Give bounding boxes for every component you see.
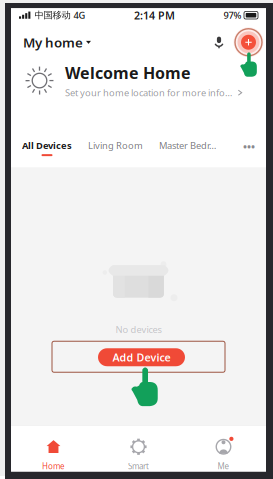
staticText: My home bbox=[23, 33, 83, 51]
staticText: No devices bbox=[115, 323, 161, 336]
button[interactable]: Add Device bbox=[98, 348, 185, 366]
staticText: Set your home location for more informa… bbox=[65, 86, 233, 99]
button[interactable]: Home bbox=[11, 426, 96, 472]
staticText: Smart bbox=[128, 461, 149, 471]
staticText: Add Device bbox=[112, 350, 170, 364]
staticText: Me bbox=[217, 461, 229, 471]
staticText: Welcome Home bbox=[65, 62, 191, 83]
staticText: ••• bbox=[243, 139, 255, 153]
button[interactable]: My home bbox=[23, 29, 91, 55]
staticText: All Devices bbox=[22, 139, 72, 152]
staticText: Master Bedr… bbox=[159, 139, 216, 152]
staticText: 4G bbox=[73, 9, 85, 21]
button[interactable]: More rooms bbox=[243, 137, 255, 155]
button[interactable]: All Devices bbox=[22, 137, 72, 158]
button[interactable]: Living Room bbox=[72, 137, 143, 154]
button[interactable]: Voice control bbox=[208, 31, 230, 53]
button[interactable]: Me bbox=[181, 426, 266, 472]
button[interactable]: Master Bedr… bbox=[143, 137, 216, 154]
staticText: 2:14 PM bbox=[134, 8, 175, 22]
staticText: Home bbox=[42, 461, 65, 471]
staticText: 中国移动 bbox=[34, 9, 70, 21]
button[interactable]: Smart bbox=[96, 426, 181, 472]
staticText: 97% bbox=[223, 9, 241, 21]
button[interactable]: Add device bbox=[233, 27, 264, 58]
staticText: Living Room bbox=[88, 139, 143, 152]
button[interactable]: Welcome Home bbox=[11, 53, 266, 108]
